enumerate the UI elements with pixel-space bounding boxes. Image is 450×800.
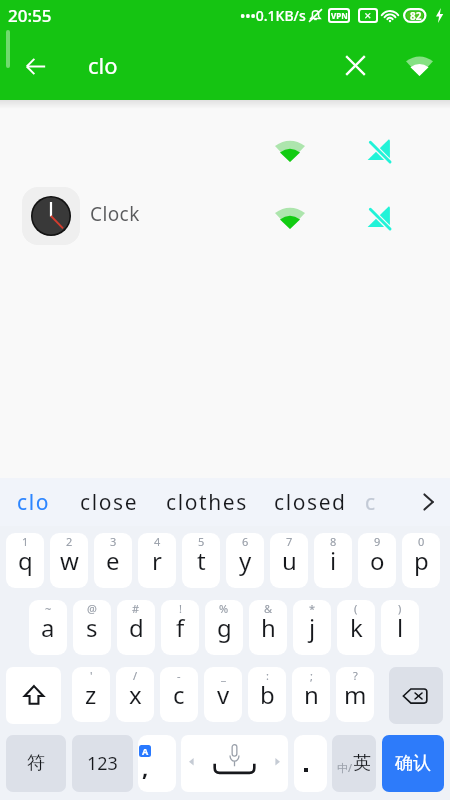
button[interactable]: & — [249, 600, 287, 655]
button[interactable]: Period — [294, 735, 327, 792]
staticText: & — [264, 601, 273, 616]
button[interactable]: _ — [204, 667, 242, 722]
staticText: c — [365, 488, 375, 517]
button[interactable]: 中 — [332, 735, 376, 792]
staticText: , — [142, 752, 149, 782]
staticText: 中 — [337, 761, 348, 775]
button[interactable]: 5 — [182, 533, 220, 588]
staticText: ! — [179, 601, 182, 616]
staticText: 0 — [418, 534, 425, 549]
staticText: 1 — [22, 534, 29, 549]
button[interactable]: * — [293, 600, 331, 655]
staticText: b — [260, 678, 275, 711]
button[interactable]: 1 — [6, 533, 44, 588]
staticText: - — [177, 668, 181, 683]
button[interactable]: ; — [292, 667, 330, 722]
staticText: h — [261, 611, 276, 644]
staticText: ? — [353, 668, 358, 683]
staticText: A — [142, 745, 149, 757]
staticText: / — [348, 760, 353, 775]
button[interactable]: / — [116, 667, 154, 722]
staticText: Clock — [90, 201, 140, 227]
button[interactable]: @ — [73, 600, 111, 655]
staticText: 3 — [110, 534, 117, 549]
staticText: 8 — [330, 534, 337, 549]
button[interactable]: 4 — [138, 533, 176, 588]
button[interactable]: closed — [267, 478, 354, 526]
staticText: * — [309, 601, 316, 616]
staticText: close — [80, 488, 139, 517]
staticText: ( — [354, 601, 358, 616]
staticText: # — [132, 601, 140, 616]
staticText: _ — [221, 668, 226, 683]
button[interactable]: Space — [181, 735, 288, 792]
staticText: closed — [274, 488, 347, 517]
staticText: / — [133, 668, 138, 683]
button[interactable]: ( — [337, 600, 375, 655]
staticText: @ — [87, 601, 97, 616]
staticText: y — [239, 544, 252, 577]
staticText: c — [173, 678, 185, 711]
button[interactable]: - — [160, 667, 198, 722]
button[interactable]: 9 — [358, 533, 396, 588]
button[interactable]: 确认 — [382, 735, 444, 792]
button[interactable]: 0 — [402, 533, 440, 588]
button[interactable]: 7 — [270, 533, 308, 588]
button[interactable]: Shift — [6, 667, 61, 724]
staticText: a — [41, 611, 55, 644]
staticText: : — [266, 668, 269, 683]
staticText: 符 — [27, 752, 45, 775]
button[interactable]: Clear — [331, 41, 379, 89]
button[interactable]: ! — [161, 600, 199, 655]
button[interactable]: 2 — [50, 533, 88, 588]
button[interactable] — [0, 100, 450, 168]
staticText: ' — [90, 668, 93, 683]
staticText: d — [129, 611, 144, 644]
staticText: ~ — [45, 601, 52, 616]
staticText: •••0.1KB/s — [240, 6, 306, 25]
staticText: 英 — [353, 752, 371, 775]
button[interactable]: Clock — [0, 168, 450, 236]
staticText: ✕ — [364, 11, 372, 21]
staticText: l — [397, 611, 404, 644]
button[interactable]: % — [205, 600, 243, 655]
staticText: r — [152, 544, 162, 577]
button[interactable]: clo — [10, 478, 58, 526]
button[interactable]: A — [138, 735, 176, 792]
button[interactable]: Voice search — [395, 41, 443, 89]
staticText: clo — [88, 50, 118, 80]
staticText: e — [106, 544, 120, 577]
button[interactable]: clothes — [159, 478, 255, 526]
staticText: 4 — [154, 534, 161, 549]
button[interactable]: Back — [12, 42, 58, 88]
button[interactable]: ) — [381, 600, 419, 655]
button[interactable]: 3 — [94, 533, 132, 588]
staticText: ) — [398, 601, 402, 616]
staticText: clothes — [166, 488, 248, 517]
staticText: m — [344, 678, 367, 711]
button[interactable]: 123 — [72, 735, 133, 792]
button[interactable]: 8 — [314, 533, 352, 588]
staticText: v — [217, 678, 230, 711]
staticText: q — [18, 544, 33, 577]
staticText: i — [330, 544, 337, 577]
button[interactable]: ~ — [29, 600, 67, 655]
staticText: f — [176, 611, 185, 644]
staticText: p — [414, 544, 429, 577]
button[interactable]: # — [117, 600, 155, 655]
button[interactable]: 符 — [6, 735, 66, 792]
button[interactable]: c — [365, 478, 375, 526]
button[interactable]: ' — [72, 667, 110, 722]
button[interactable]: : — [248, 667, 286, 722]
staticText: k — [350, 611, 363, 644]
button[interactable]: Backspace — [389, 667, 443, 724]
button[interactable]: 6 — [226, 533, 264, 588]
button[interactable]: More suggestions — [406, 478, 450, 526]
staticText: u — [282, 544, 297, 577]
button[interactable]: ? — [336, 667, 374, 722]
staticText: VPN — [331, 10, 348, 21]
button[interactable]: close — [73, 478, 146, 526]
staticText: 20:55 — [8, 4, 52, 27]
staticText: w — [60, 544, 79, 577]
staticText: z — [85, 678, 97, 711]
